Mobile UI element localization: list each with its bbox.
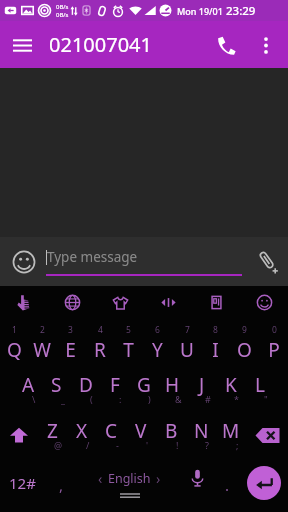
staticText: 8: [213, 324, 218, 336]
button[interactable]: Backspace: [246, 412, 288, 458]
staticText: ,: [59, 475, 64, 495]
staticText: /: [86, 439, 90, 451]
staticText: U: [180, 337, 194, 363]
button[interactable]: Z: [38, 412, 67, 458]
staticText: ;: [236, 439, 239, 451]
staticText: -: [116, 439, 119, 451]
staticText: \: [32, 393, 36, 405]
button[interactable]: 2: [28, 320, 56, 366]
staticText: *: [234, 393, 239, 405]
staticText: English: [108, 470, 151, 487]
button[interactable]: Gesture typing: [0, 286, 48, 318]
staticText: ›: [156, 469, 161, 488]
button[interactable]: Resize keyboard: [144, 286, 192, 318]
staticText: (: [90, 393, 93, 405]
staticText: H: [165, 372, 180, 398]
staticText: Type message: [47, 248, 138, 266]
staticText: K: [225, 372, 237, 398]
staticText: L: [255, 372, 265, 398]
staticText: W: [33, 337, 51, 363]
button[interactable]: More options: [247, 26, 285, 64]
button[interactable]: S: [42, 366, 71, 412]
button[interactable]: V: [126, 412, 156, 458]
button[interactable]: C: [96, 412, 126, 458]
staticText: 23:29: [226, 3, 256, 19]
button[interactable]: Shift: [0, 412, 38, 458]
staticText: _: [61, 393, 65, 405]
button[interactable]: 4: [85, 320, 114, 366]
staticText: ): [148, 393, 151, 405]
staticText: 5: [126, 324, 131, 336]
staticText: @: [54, 439, 63, 451]
staticText: D: [79, 372, 93, 398]
button[interactable]: H: [158, 366, 187, 412]
staticText: V: [135, 418, 147, 444]
staticText: 0B/s: [56, 3, 69, 11]
button[interactable]: Call: [205, 24, 247, 66]
button[interactable]: 1: [0, 320, 28, 366]
staticText: X: [76, 418, 88, 444]
button[interactable]: M: [216, 412, 246, 458]
button[interactable]: 12#: [0, 458, 44, 508]
staticText: :: [119, 393, 122, 405]
staticText: 021007041: [49, 31, 152, 58]
button[interactable]: One handed mode: [192, 286, 240, 318]
staticText: .: [225, 475, 230, 495]
button[interactable]: 8: [201, 320, 230, 366]
staticText: A: [22, 372, 35, 398]
staticText: 0: [272, 324, 277, 336]
staticText: R: [94, 337, 106, 363]
staticText: F: [110, 372, 120, 398]
button[interactable]: Menu: [0, 23, 44, 67]
button[interactable]: Theme: [96, 286, 144, 318]
button[interactable]: Voice input: [180, 458, 214, 508]
staticText: 2: [40, 324, 45, 336]
staticText: ‹: [98, 469, 103, 488]
staticText: P: [268, 337, 280, 363]
staticText: I: [212, 337, 219, 363]
staticText: Mon 19/01: [177, 5, 223, 17]
button[interactable]: Attach: [251, 245, 285, 279]
staticText: J: [199, 372, 205, 398]
button[interactable]: Emoji: [9, 247, 39, 277]
button[interactable]: D: [71, 366, 100, 412]
button[interactable]: ,: [44, 458, 78, 508]
button[interactable]: 7: [172, 320, 201, 366]
button[interactable]: 5: [114, 320, 143, 366]
button[interactable]: 0: [259, 320, 288, 366]
staticText: ': [146, 439, 149, 451]
button[interactable]: Language: [48, 286, 96, 318]
button[interactable]: Enter: [240, 458, 288, 508]
staticText: G: [137, 372, 151, 398]
staticText: 7: [185, 324, 190, 336]
button[interactable]: Emoji: [240, 286, 288, 318]
button[interactable]: X: [67, 412, 96, 458]
button[interactable]: F: [100, 366, 129, 412]
staticText: C: [105, 418, 118, 444]
staticText: 6: [155, 324, 160, 336]
button[interactable]: K: [216, 366, 245, 412]
staticText: M: [222, 418, 240, 444]
staticText: !: [176, 439, 179, 451]
staticText: #: [205, 393, 211, 405]
button[interactable]: A: [14, 366, 42, 412]
button[interactable]: N: [186, 412, 216, 458]
button[interactable]: Space: [78, 458, 180, 508]
button[interactable]: G: [129, 366, 158, 412]
button[interactable]: 6: [143, 320, 172, 366]
staticText: 4: [98, 324, 103, 336]
staticText: S: [51, 372, 62, 398]
button[interactable]: 9: [230, 320, 259, 366]
staticText: B: [165, 418, 178, 444]
button[interactable]: J: [187, 366, 216, 412]
staticText: 3: [68, 324, 73, 336]
button[interactable]: B: [156, 412, 186, 458]
button[interactable]: .: [214, 458, 240, 508]
staticText: Q: [7, 337, 22, 363]
staticText: ?: [205, 439, 209, 451]
button[interactable]: 3: [56, 320, 85, 366]
button[interactable]: L: [245, 366, 274, 412]
staticText: 0B/s: [56, 11, 69, 19]
staticText: T: [123, 337, 134, 363]
staticText: 12#: [9, 473, 36, 493]
